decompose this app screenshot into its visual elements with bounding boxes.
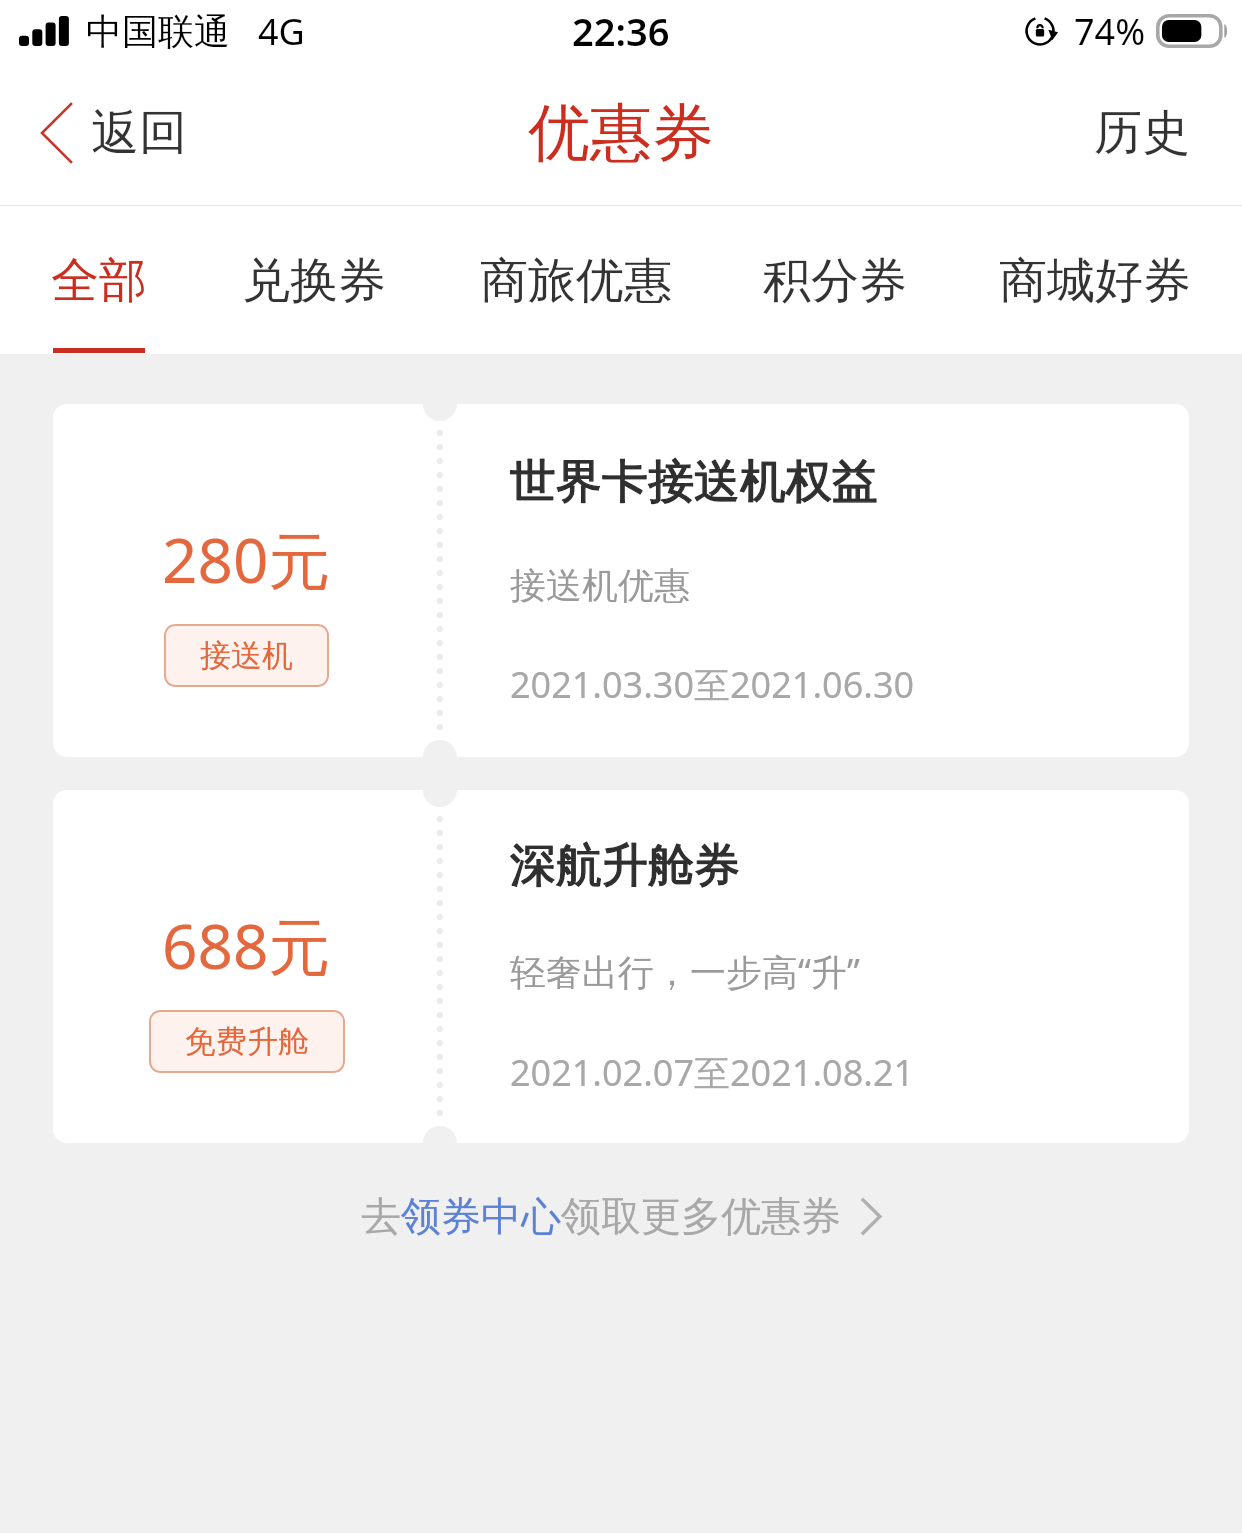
staticText: 商旅优惠 bbox=[480, 251, 672, 311]
button[interactable]: 历史 bbox=[1050, 68, 1242, 198]
staticText: 4G bbox=[258, 7, 305, 56]
staticText: 轻奢出行，一步高“升” bbox=[510, 947, 860, 996]
staticText: 返回 bbox=[91, 103, 187, 163]
staticText: 中国联通 bbox=[86, 9, 230, 54]
staticText: 2021.03.30至2021.06.30 bbox=[510, 660, 915, 709]
button[interactable]: 兑换券 bbox=[222, 206, 406, 354]
staticText: 74% bbox=[1074, 7, 1146, 56]
staticText: 商城好券 bbox=[999, 251, 1191, 311]
button[interactable]: 688元 bbox=[53, 790, 1189, 1143]
staticText: 世界卡接送机权益 bbox=[510, 453, 878, 511]
button[interactable]: 全部 bbox=[31, 206, 167, 354]
staticText: 历史 bbox=[1094, 103, 1190, 163]
button[interactable]: 280元 bbox=[53, 404, 1189, 757]
other: More coupons bbox=[861, 1200, 882, 1233]
button[interactable]: 商城好券 bbox=[979, 206, 1211, 354]
staticText: 2021.02.07至2021.08.21 bbox=[510, 1048, 915, 1097]
button[interactable]: Back bbox=[0, 68, 213, 198]
button[interactable]: 去领券中心领取更多优惠券 bbox=[351, 1185, 892, 1247]
staticText: 兑换券 bbox=[242, 251, 386, 311]
staticText: 免费升舱 bbox=[185, 1022, 309, 1061]
staticText: 22:36 bbox=[572, 5, 670, 57]
staticText: 接送机优惠 bbox=[510, 563, 690, 608]
button[interactable]: 商旅优惠 bbox=[460, 206, 692, 354]
staticText: 世界卡接送机权益 bbox=[510, 453, 878, 511]
staticText: 接送机 bbox=[200, 636, 293, 675]
staticText: 优惠券 bbox=[528, 94, 714, 172]
button[interactable]: 积分券 bbox=[743, 206, 927, 354]
staticText: 去领券中心领取更多优惠券 bbox=[361, 1191, 841, 1241]
staticText: 积分券 bbox=[763, 251, 907, 311]
staticText: 688元 bbox=[162, 903, 331, 988]
staticText: 深航升舱券 bbox=[510, 837, 740, 895]
staticText: 280元 bbox=[162, 517, 331, 602]
staticText: 全部 bbox=[51, 251, 147, 311]
staticText: 深航升舱券 bbox=[510, 837, 740, 895]
